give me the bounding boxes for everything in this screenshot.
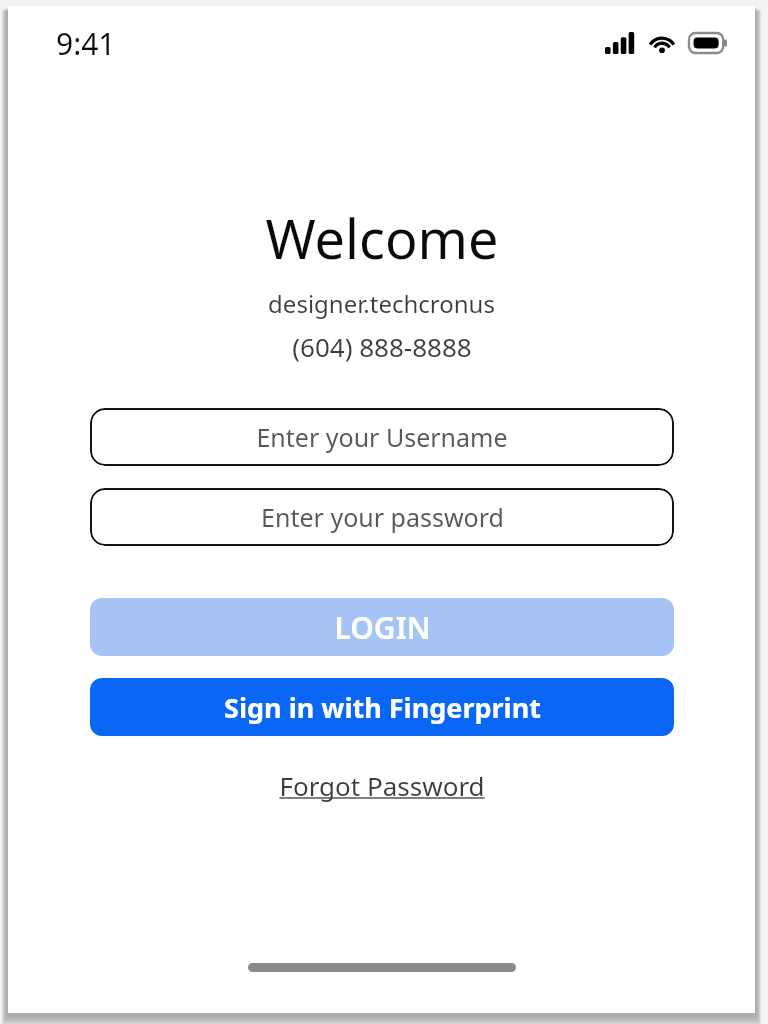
- button[interactable]: Enter your password: [90, 488, 674, 546]
- staticText: Enter your password: [261, 500, 504, 534]
- staticText: LOGIN: [334, 607, 431, 648]
- staticText: 9:41: [56, 23, 116, 64]
- button[interactable]: LOGIN: [90, 598, 674, 656]
- staticText: Enter your Username: [256, 420, 508, 454]
- other: Wi-Fi: [647, 32, 677, 54]
- staticText: (604) 888-8888: [292, 329, 472, 364]
- staticText: Forgot Password: [279, 768, 485, 803]
- button[interactable]: Enter your Username: [90, 408, 674, 466]
- staticText: Sign in with Fingerprint: [224, 689, 541, 726]
- staticText: designer.techcronus: [268, 287, 495, 320]
- button[interactable]: Forgot Password: [269, 764, 495, 807]
- other: Battery full: [689, 33, 727, 53]
- other: Cellular signal: [605, 32, 635, 54]
- button[interactable]: Sign in with Fingerprint: [90, 678, 674, 736]
- staticText: Welcome: [265, 201, 499, 275]
